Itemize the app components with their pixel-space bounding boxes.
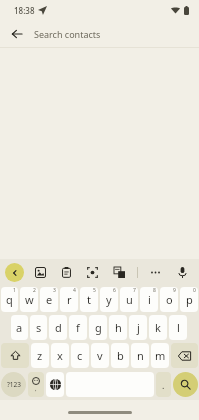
button[interactable]: p <box>180 287 198 312</box>
staticText: x <box>57 348 63 363</box>
button[interactable]: Change language <box>46 372 64 397</box>
button[interactable]: More options <box>146 263 165 282</box>
staticText: t <box>87 292 91 307</box>
button[interactable]: l <box>169 315 187 340</box>
button[interactable]: Translate <box>110 263 129 282</box>
button[interactable]: Search contacts <box>34 20 199 47</box>
staticText: c <box>77 348 83 363</box>
button[interactable]: Clipboard <box>57 263 76 282</box>
staticText: 4 <box>73 287 76 294</box>
staticText: 5 <box>93 287 96 294</box>
button[interactable]: Lens <box>83 263 102 282</box>
button[interactable]: g <box>89 315 107 340</box>
button[interactable]: Stickers <box>31 263 50 282</box>
staticText: i <box>148 292 151 307</box>
staticText: d <box>55 320 62 335</box>
button[interactable]: x <box>51 343 69 368</box>
button[interactable]: f <box>69 315 87 340</box>
button[interactable]: e <box>40 287 58 312</box>
staticText: g <box>95 320 102 335</box>
staticText: 3 <box>53 287 56 294</box>
staticText: . <box>162 379 165 391</box>
button[interactable]: r <box>60 287 78 312</box>
button[interactable]: d <box>49 315 67 340</box>
button[interactable]: v <box>91 343 109 368</box>
staticText: v <box>97 348 103 363</box>
button[interactable]: w <box>20 287 38 312</box>
button[interactable]: Emoji <box>28 372 44 397</box>
button[interactable]: Shift <box>1 343 29 368</box>
staticText: j <box>137 320 140 335</box>
staticText: 2 <box>33 287 36 294</box>
button[interactable]: m <box>151 343 169 368</box>
button[interactable]: Backspace <box>171 343 198 368</box>
button[interactable]: i <box>140 287 158 312</box>
button[interactable]: a <box>11 315 28 340</box>
button[interactable]: s <box>30 315 47 340</box>
staticText: m <box>155 348 166 363</box>
staticText: a <box>16 320 23 335</box>
button[interactable]: h <box>109 315 127 340</box>
staticText: 6 <box>113 287 116 294</box>
staticText: s <box>36 320 42 335</box>
staticText: 1 <box>13 287 16 294</box>
staticText: r <box>67 292 72 307</box>
button[interactable]: q <box>1 287 18 312</box>
staticText: , <box>35 385 37 393</box>
staticText: ?123 <box>7 380 21 389</box>
button[interactable]: Back <box>6 23 28 45</box>
staticText: h <box>115 320 122 335</box>
staticText: 7 <box>133 287 136 294</box>
button[interactable]: Voice input <box>173 263 192 282</box>
staticText: w <box>25 292 34 307</box>
staticText: z <box>37 348 43 363</box>
button[interactable]: Search <box>173 372 198 397</box>
staticText: o <box>166 292 173 307</box>
button[interactable]: Expand toolbar <box>5 263 24 282</box>
staticText: e <box>46 292 53 307</box>
button[interactable]: y <box>100 287 118 312</box>
button[interactable]: j <box>129 315 147 340</box>
button[interactable]: u <box>120 287 138 312</box>
staticText: y <box>106 292 112 307</box>
button[interactable]: t <box>80 287 98 312</box>
staticText: n <box>137 348 144 363</box>
staticText: p <box>186 292 193 307</box>
staticText: f <box>76 320 80 335</box>
staticText: 8 <box>153 287 156 294</box>
button[interactable]: c <box>71 343 89 368</box>
staticText: 18:38 <box>14 5 35 16</box>
button[interactable]: n <box>131 343 149 368</box>
staticText: k <box>155 320 161 335</box>
button[interactable]: z <box>31 343 49 368</box>
staticText: u <box>126 292 133 307</box>
staticText: Search contacts <box>34 28 101 40</box>
staticText: 9 <box>173 287 176 294</box>
staticText: l <box>177 320 180 335</box>
staticText: 0 <box>193 287 196 294</box>
staticText: b <box>117 348 124 363</box>
staticText: q <box>6 292 13 307</box>
button[interactable]: k <box>149 315 167 340</box>
button[interactable]: ?123 <box>1 372 26 397</box>
button[interactable]: o <box>160 287 178 312</box>
button[interactable]: b <box>111 343 129 368</box>
button[interactable]: . <box>156 372 171 397</box>
